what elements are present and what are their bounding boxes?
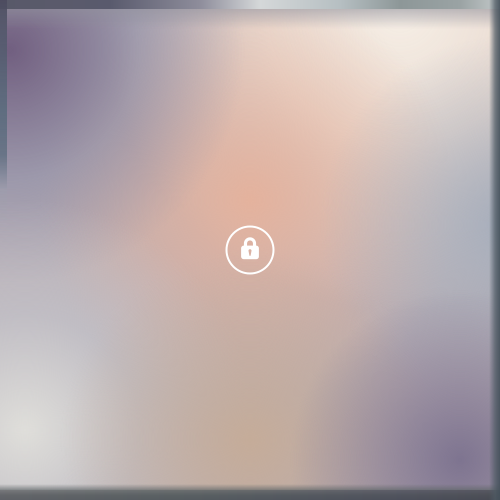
button[interactable]: Locked — [218, 218, 282, 282]
